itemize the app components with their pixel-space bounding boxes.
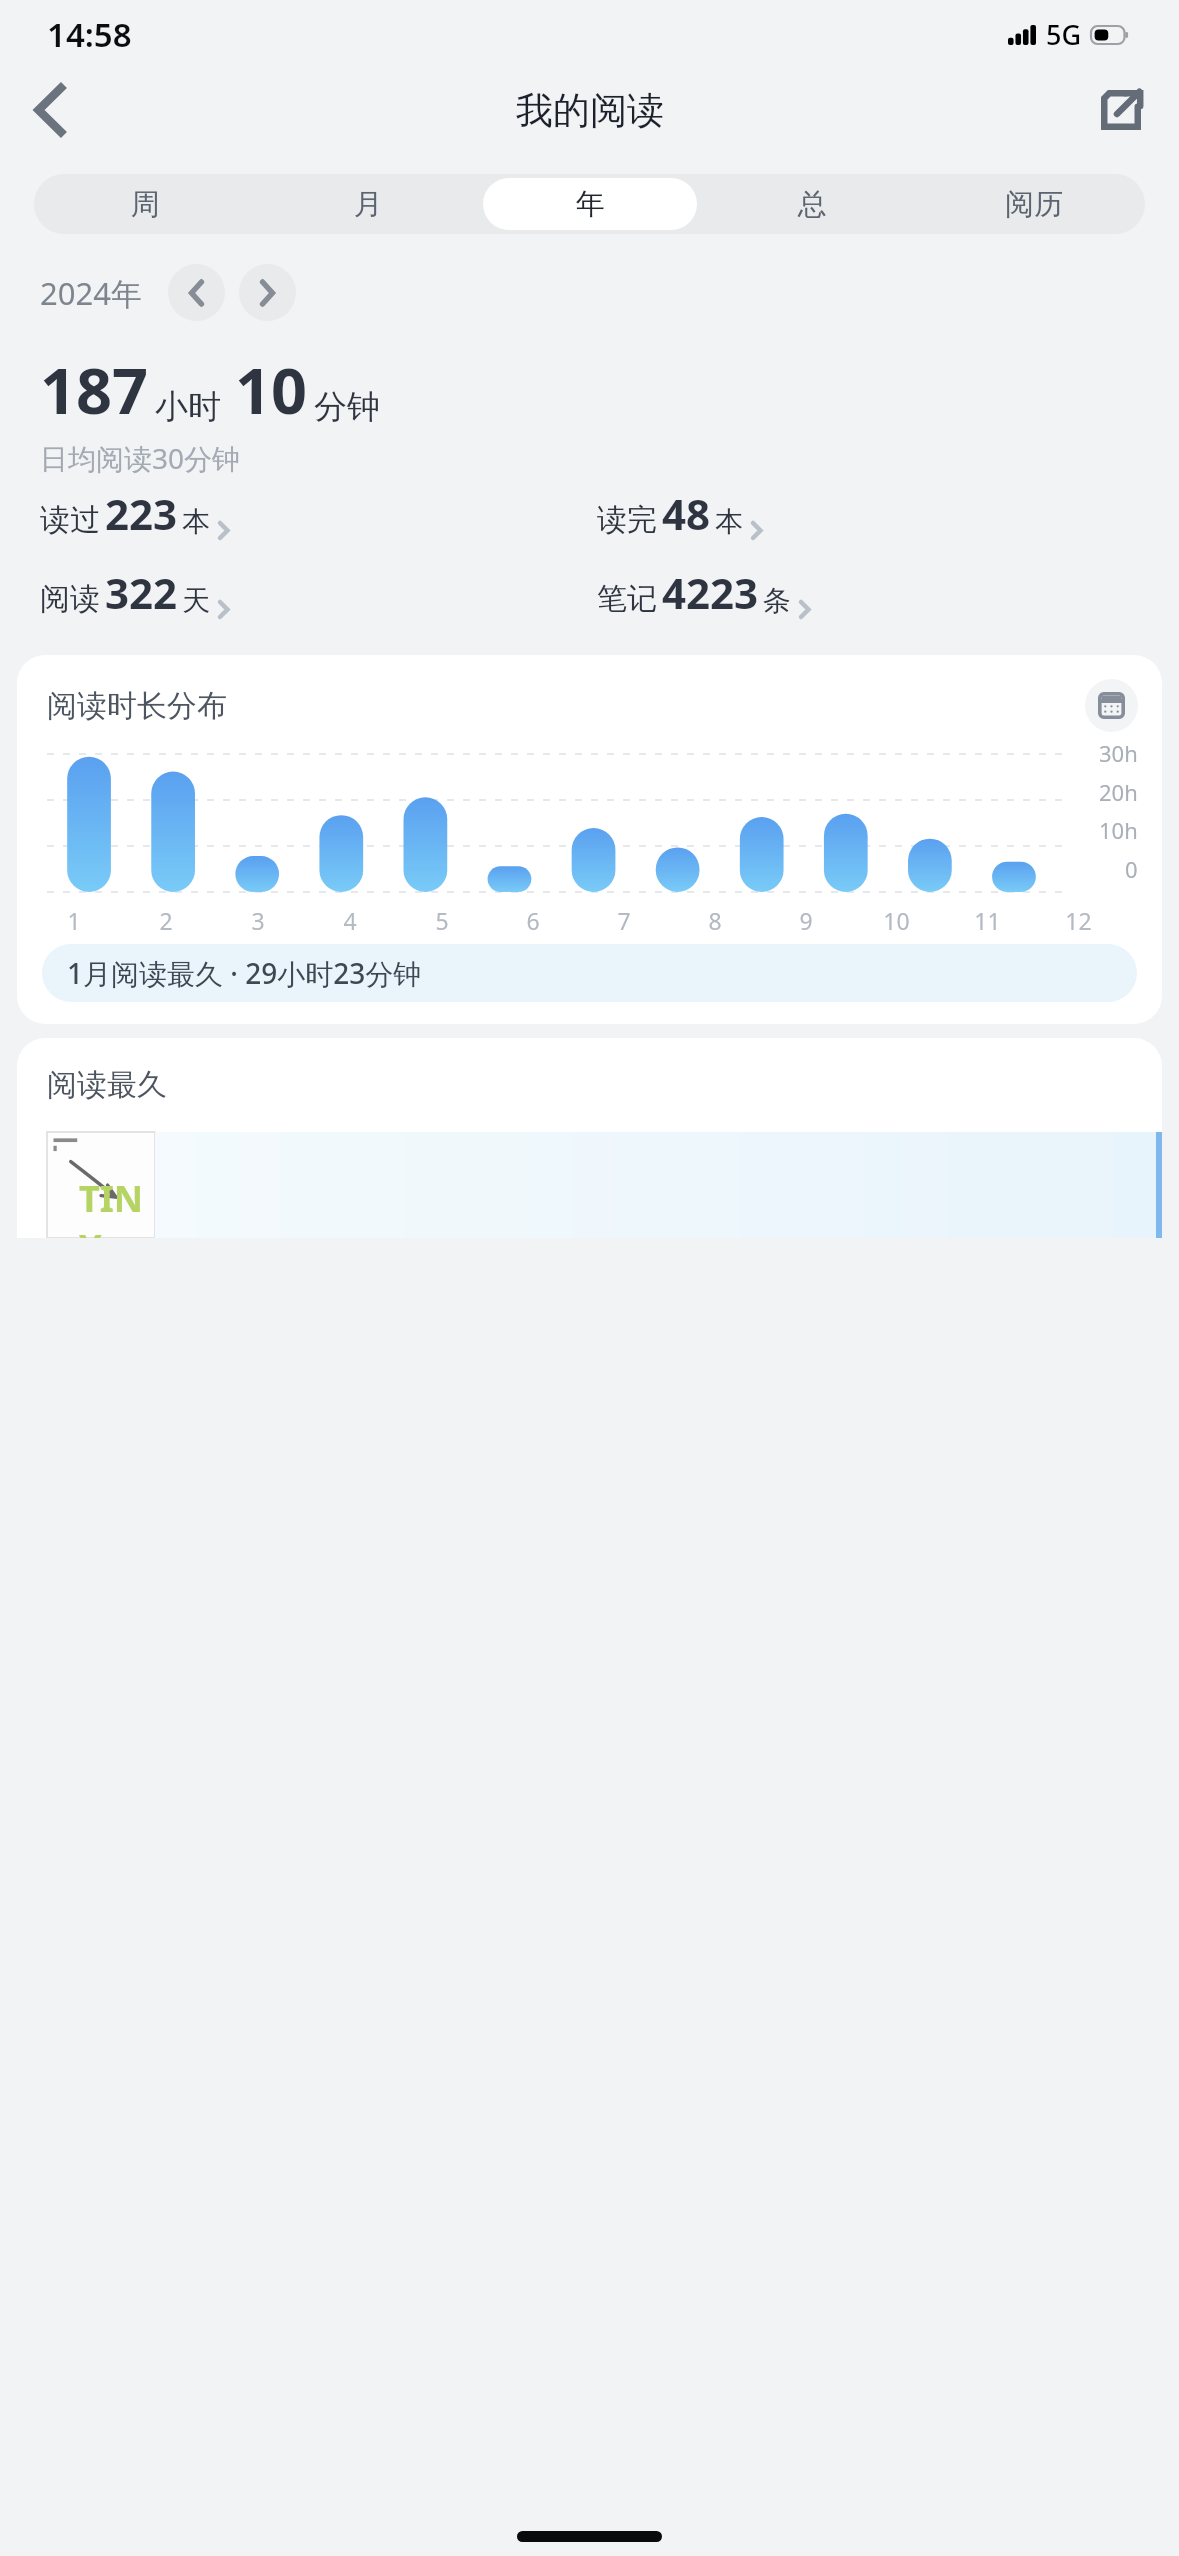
button[interactable]: Share [1085, 74, 1157, 146]
staticText: 我的阅读 [516, 87, 664, 134]
staticText: 1 [67, 905, 81, 936]
staticText: 本 [182, 504, 210, 539]
button[interactable]: 读过 [40, 485, 597, 542]
button[interactable]: 1月阅读最久 · 29小时23分钟 [42, 944, 1137, 1002]
button[interactable]: Previous year [168, 264, 225, 321]
staticText: 天 [182, 583, 210, 618]
staticText: 30h [1099, 738, 1138, 768]
button[interactable]: 笔记 [597, 564, 1155, 621]
staticText: 20h [1099, 777, 1138, 807]
staticText: 条 [763, 583, 791, 618]
button[interactable]: Next year [239, 264, 296, 321]
staticText: 4 [343, 905, 357, 936]
staticText: 读过 [40, 501, 100, 539]
staticText: 小时 [155, 386, 221, 428]
button[interactable]: Calendar [1085, 679, 1138, 732]
staticText: 总 [798, 186, 827, 223]
staticText: 5 [435, 905, 449, 936]
staticText: 8 [708, 905, 722, 936]
button[interactable]: Back [14, 74, 86, 146]
staticText: 12 [1065, 905, 1092, 936]
staticText: 读完 [597, 501, 657, 539]
staticText: 本 [715, 504, 743, 539]
staticText: 11 [974, 905, 1001, 936]
button[interactable]: 读完 [597, 485, 1155, 542]
button[interactable]: 周 [38, 178, 253, 230]
staticText: 月 [354, 186, 383, 223]
button[interactable]: 阅历 [927, 178, 1141, 230]
staticText: 9 [799, 905, 813, 936]
button[interactable]: 阅读 [40, 564, 597, 621]
staticText: 阅读 [40, 580, 100, 618]
staticText: 日均阅读30分钟 [40, 439, 241, 477]
staticText: 分钟 [314, 386, 380, 428]
staticText: 10 [235, 347, 308, 433]
staticText: 3 [251, 905, 265, 936]
button[interactable]: 年 [483, 178, 697, 230]
staticText: 4223 [662, 564, 759, 621]
staticText: 7 [617, 905, 631, 936]
button[interactable]: 月 [261, 178, 475, 230]
staticText: 阅读时长分布 [47, 687, 227, 725]
staticText: 187 [40, 347, 149, 433]
staticText: 笔记 [597, 580, 657, 618]
staticText: 1月阅读最久 · 29小时23分钟 [67, 954, 422, 992]
staticText: 阅读最久 [47, 1066, 167, 1104]
staticText: 阅历 [1005, 186, 1063, 223]
staticText: 6 [526, 905, 540, 936]
staticText: 14:58 [47, 12, 132, 57]
staticText: 10h [1099, 815, 1138, 845]
staticText: 0 [1125, 854, 1138, 884]
staticText: 223 [105, 485, 178, 542]
button[interactable]: 总 [705, 178, 919, 230]
staticText: 2024年 [40, 272, 142, 314]
staticText: 年 [576, 186, 605, 223]
staticText: 5G [1046, 16, 1082, 53]
button[interactable]: TINY [47, 1132, 155, 1238]
staticText: 10 [883, 905, 910, 936]
staticText: TINY [79, 1174, 155, 1238]
staticText: 周 [131, 186, 160, 223]
staticText: 322 [105, 564, 178, 621]
staticText: 2 [159, 905, 173, 936]
staticText: 48 [662, 485, 711, 542]
